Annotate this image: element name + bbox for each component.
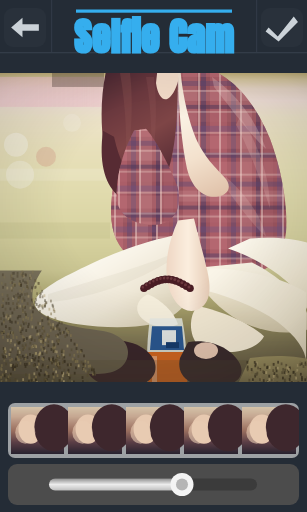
button[interactable] [8,464,299,505]
staticText: Selfie Cam [74,9,234,65]
button[interactable] [184,407,238,454]
button[interactable] [126,407,180,454]
button[interactable]: Done [261,8,303,47]
button[interactable] [242,407,296,454]
button[interactable] [11,407,64,454]
button[interactable]: Back [4,8,46,47]
button[interactable] [68,407,122,454]
